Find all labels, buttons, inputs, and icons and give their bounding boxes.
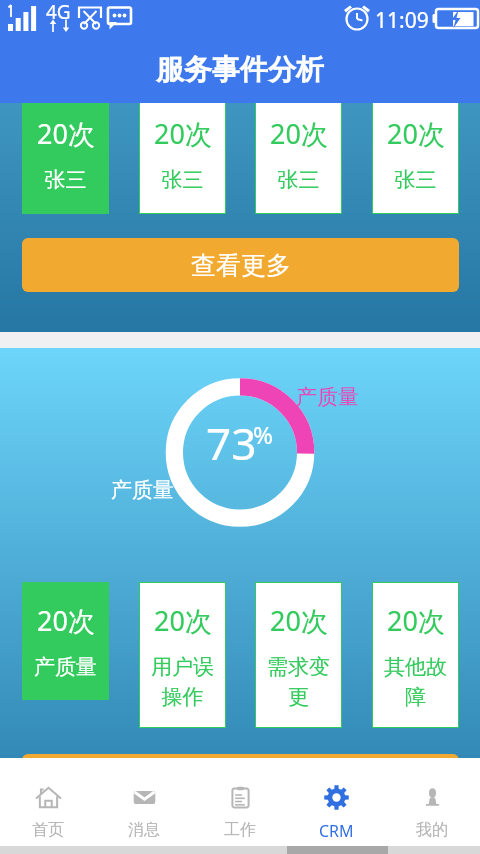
staticText: 消息 (128, 820, 160, 840)
staticText: 产质量 (26, 654, 105, 680)
button[interactable]: 20次 (139, 582, 226, 728)
staticText: 张三 (376, 167, 455, 193)
staticText: 张三 (259, 167, 338, 193)
staticText: 用户误操作 (143, 654, 222, 711)
staticText: 张三 (26, 167, 105, 193)
staticText: 73 (206, 413, 257, 473)
staticText: 11:09 (375, 6, 429, 35)
staticText: 我的 (416, 820, 448, 840)
button[interactable]: 20次 (139, 103, 226, 214)
button[interactable]: 首页 (0, 758, 96, 846)
staticText: 查看更多 (191, 250, 291, 281)
staticText: 20次 (387, 115, 445, 152)
button[interactable]: 查看更多 (22, 238, 459, 292)
button[interactable]: 消息 (96, 758, 192, 846)
staticText: 20次 (37, 602, 95, 639)
staticText: CRM (319, 820, 354, 842)
button[interactable]: 20次 (22, 582, 109, 700)
staticText: 20次 (37, 115, 95, 152)
staticText: 产质量 (296, 384, 359, 410)
button[interactable]: 工作 (192, 758, 288, 846)
staticText: % (253, 418, 273, 451)
staticText: 产质量 (111, 477, 174, 503)
staticText: 20次 (154, 115, 212, 152)
button[interactable]: 20次 (22, 103, 109, 214)
button[interactable]: 20次 (255, 582, 342, 728)
staticText: 20次 (270, 602, 328, 639)
button[interactable] (22, 754, 459, 774)
staticText: 4G (46, 0, 71, 25)
staticText: 需求变更 (259, 654, 338, 711)
staticText: 服务事件分析 (156, 52, 324, 87)
staticText: 工作 (224, 820, 256, 840)
button[interactable]: 20次 (255, 103, 342, 214)
button[interactable]: 20次 (372, 103, 459, 214)
staticText: 首页 (32, 820, 64, 840)
staticText: 张三 (143, 167, 222, 193)
staticText: 20次 (387, 602, 445, 639)
staticText: 20次 (270, 115, 328, 152)
staticText: 其他故障 (376, 654, 455, 711)
staticText: 20次 (154, 602, 212, 639)
button[interactable]: CRM (288, 758, 384, 846)
button[interactable]: 我的 (384, 758, 480, 846)
button[interactable]: 20次 (372, 582, 459, 728)
